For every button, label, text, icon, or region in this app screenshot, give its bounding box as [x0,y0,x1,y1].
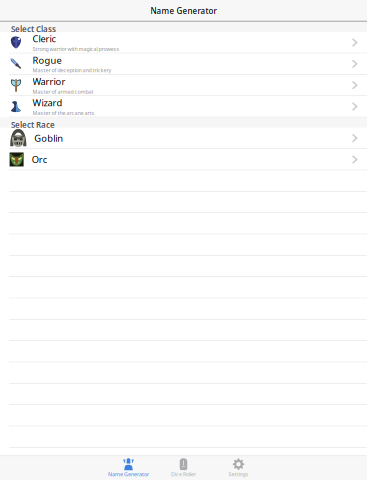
staticText: Rogue [32,54,61,66]
button[interactable]: Settings [211,455,266,480]
staticText: Name Generator [108,471,149,478]
button[interactable]: Goblin [0,128,367,149]
staticText: Master of armed combat [32,88,93,95]
staticText: Wizard [32,96,62,109]
button[interactable]: Orc [0,149,367,170]
staticText: Cleric [32,32,55,45]
button[interactable]: Rogue [0,53,367,75]
button[interactable]: Cleric [0,32,367,53]
staticText: Name Generator [150,6,216,16]
button[interactable]: Name Generator [101,455,156,480]
staticText: Settings [228,471,248,478]
staticText: Goblin [34,132,63,144]
button[interactable]: Wizard [0,96,367,117]
button[interactable]: Dice Roller [156,455,211,480]
staticText: Select Race [11,119,55,130]
staticText: Master of deception and trickery [32,67,111,74]
button[interactable]: Warrior [0,75,367,96]
staticText: Strong warrior with magical prowess [32,45,119,52]
staticText: Master of the arcane arts [32,109,94,116]
staticText: Dice Roller [171,471,196,478]
staticText: Warrior [32,75,65,88]
staticText: Select Class [11,24,56,34]
staticText: Orc [32,153,47,166]
